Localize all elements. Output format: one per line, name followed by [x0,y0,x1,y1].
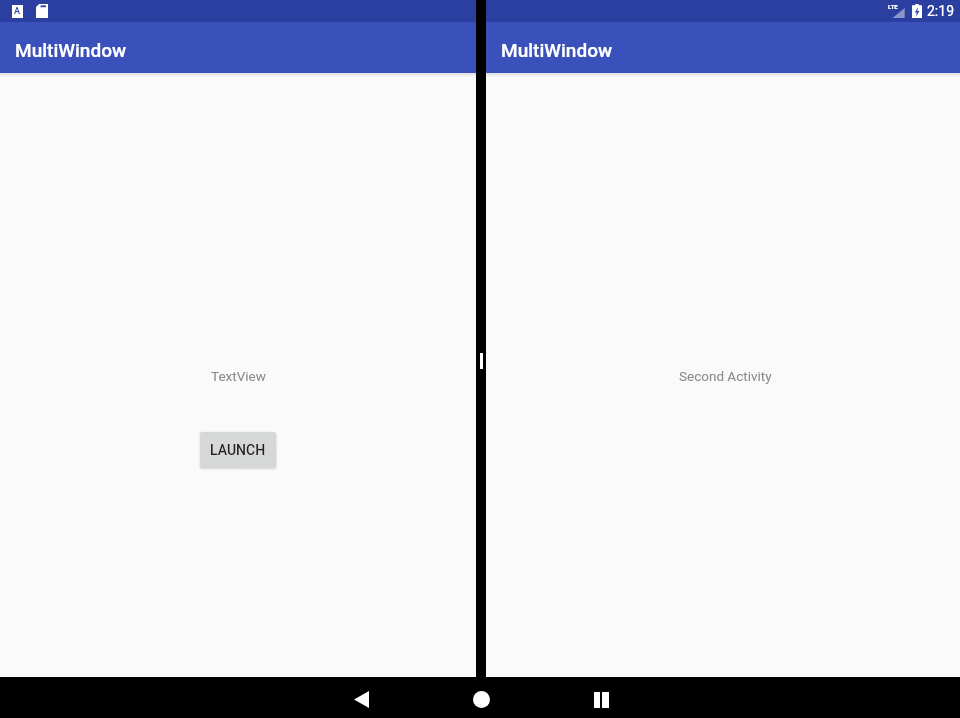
button[interactable]: Home [441,677,521,718]
button[interactable]: Recents [561,677,641,718]
staticText: TextView [211,368,266,384]
staticText: MultiWindow [15,39,127,61]
staticText: A [14,6,21,17]
staticText: 2:19 [927,3,954,19]
staticText: LAUNCH [210,442,266,458]
button[interactable]: Back [321,677,401,718]
button[interactable]: LAUNCH [200,432,276,468]
staticText: Second Activity [679,368,772,384]
staticText: LTE [888,3,898,10]
staticText: MultiWindow [501,39,613,61]
